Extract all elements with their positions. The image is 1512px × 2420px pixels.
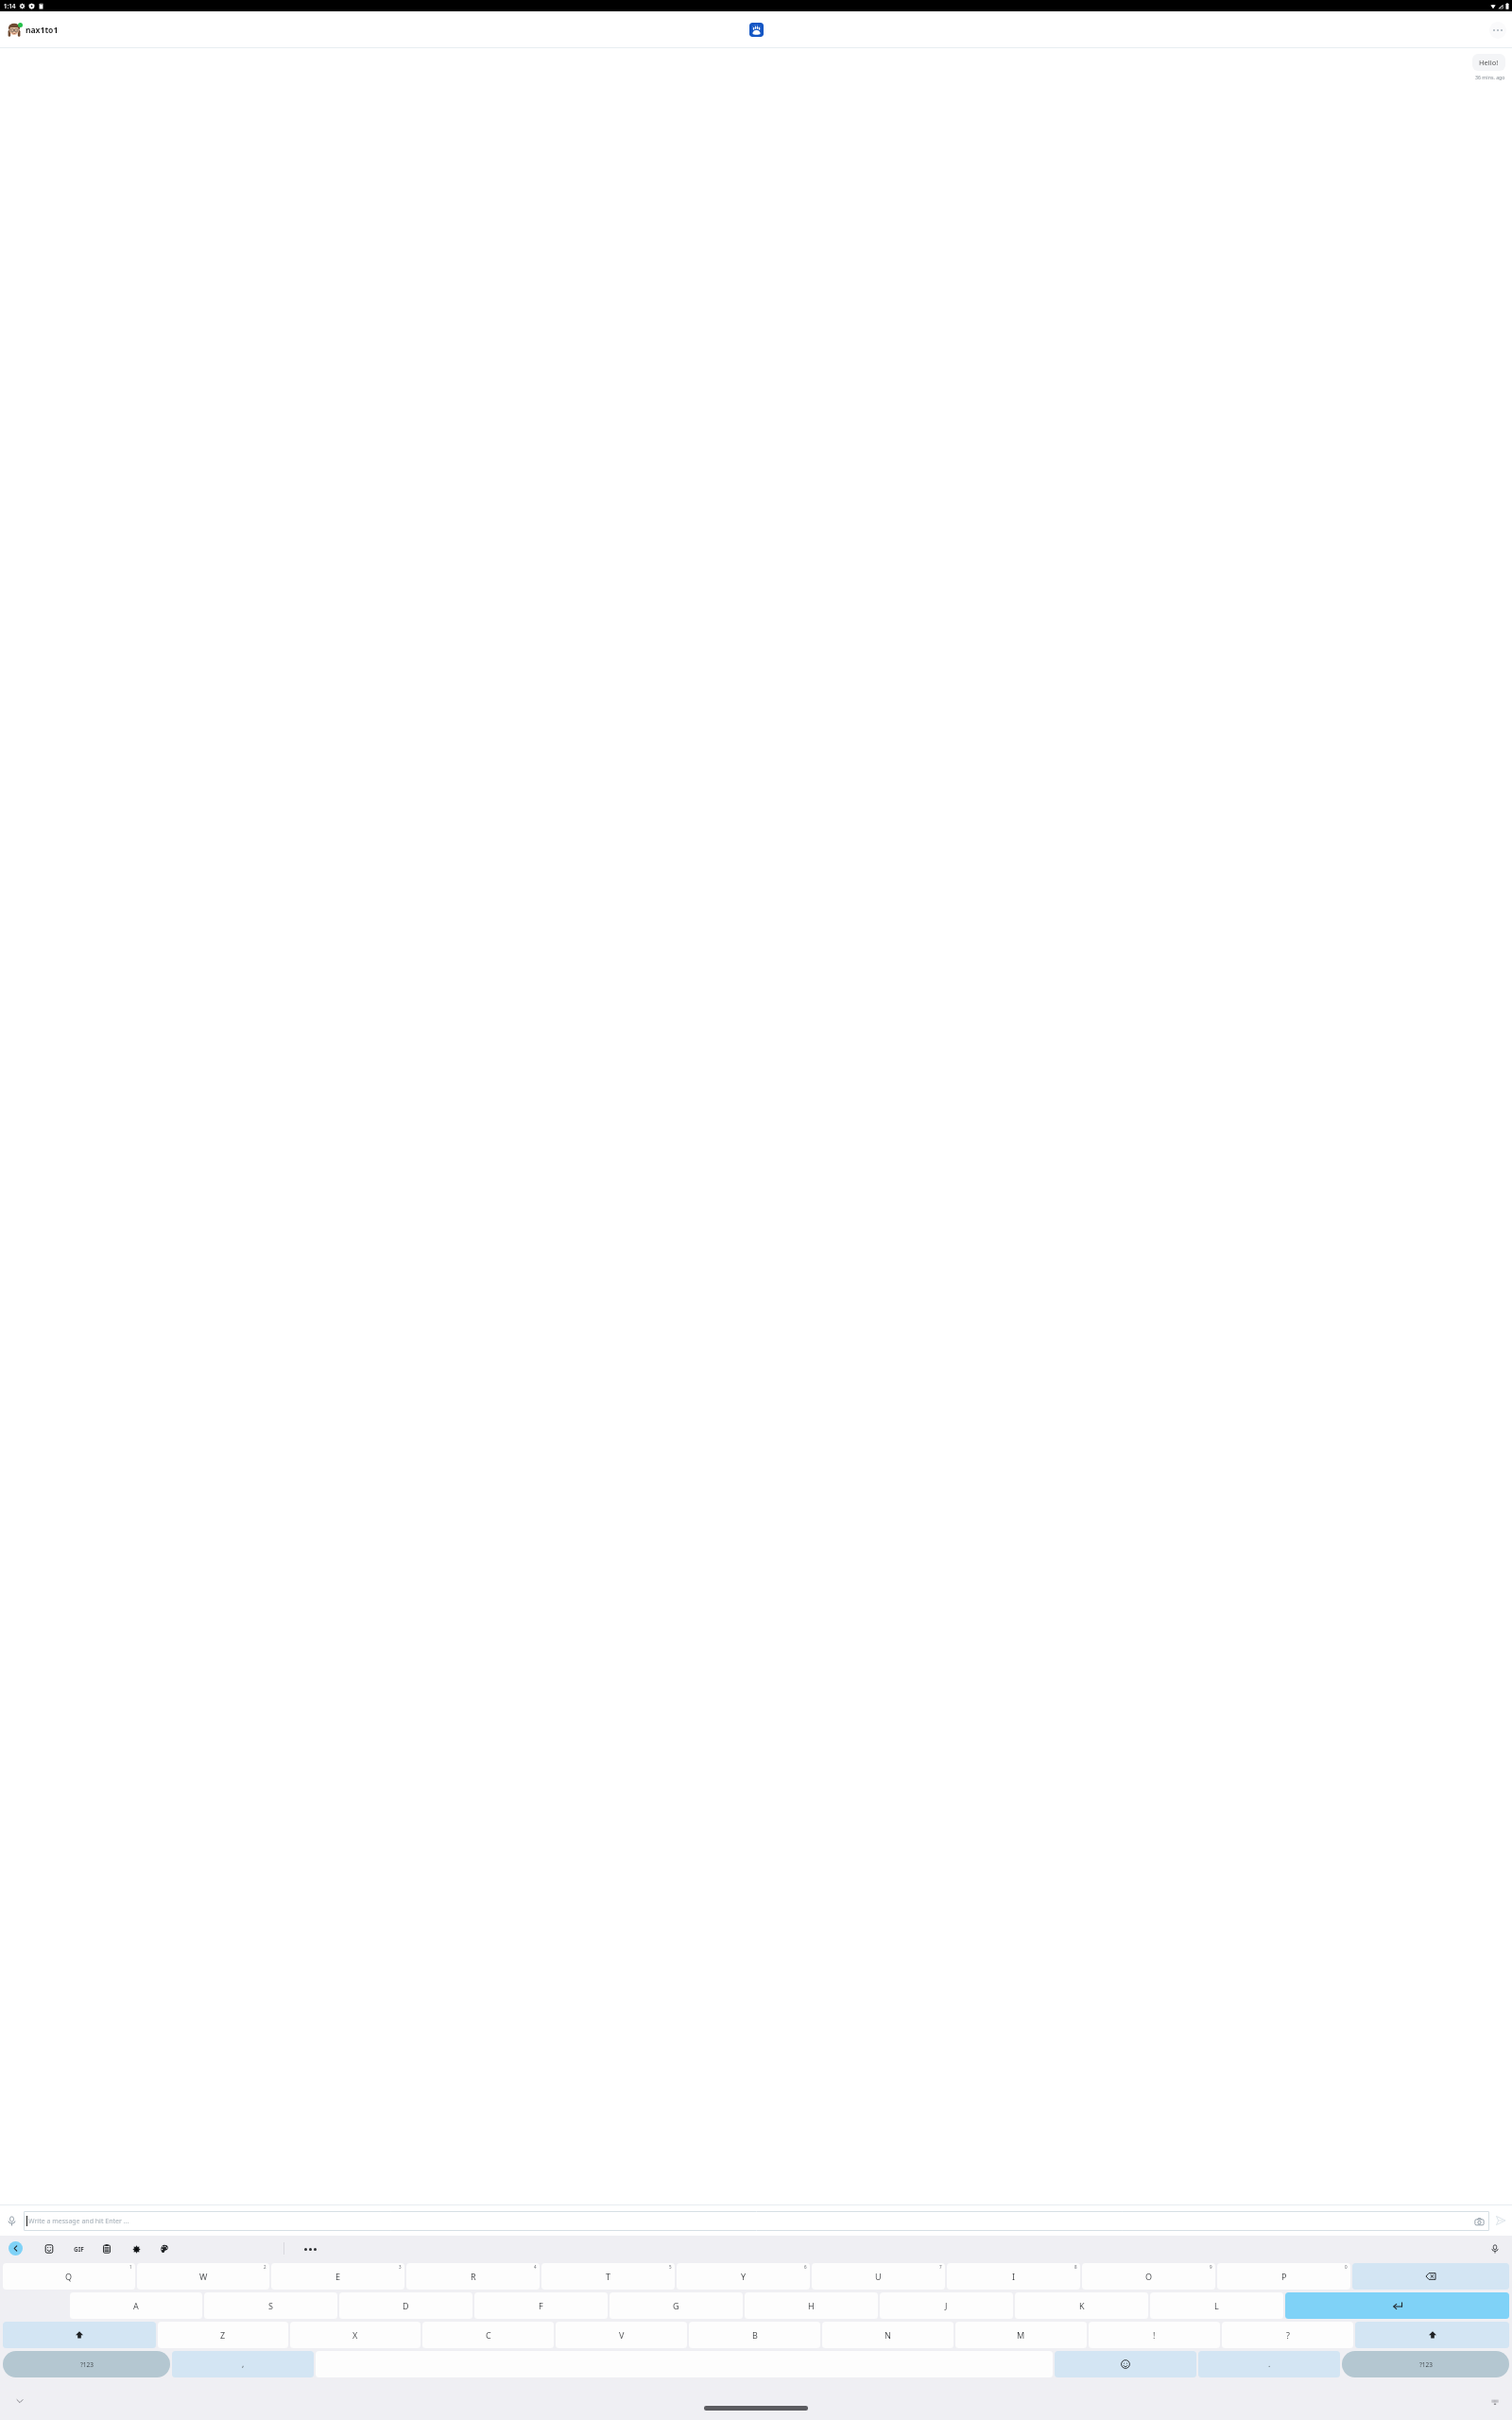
button[interactable]: D <box>339 2292 472 2319</box>
button[interactable]: Send <box>1489 2205 1512 2236</box>
button[interactable]: I <box>947 2263 1080 2290</box>
staticText: 6 <box>804 2264 807 2270</box>
button[interactable]: P <box>1217 2263 1350 2290</box>
button[interactable]: Q <box>3 2263 135 2290</box>
staticText: K <box>1079 2300 1085 2311</box>
button[interactable]: C <box>422 2322 554 2348</box>
button[interactable]: U <box>812 2263 945 2290</box>
staticText: 7 <box>939 2264 942 2270</box>
button[interactable]: nax1to1 <box>5 21 60 40</box>
button[interactable]: S <box>204 2292 337 2319</box>
staticText: N <box>885 2329 891 2341</box>
button[interactable]: Z <box>158 2322 288 2348</box>
staticText: ? <box>1286 2329 1290 2341</box>
staticText: T <box>606 2271 611 2282</box>
button[interactable]: A <box>70 2292 202 2319</box>
button[interactable]: Hide keyboard <box>13 2394 26 2408</box>
button[interactable]: G <box>610 2292 743 2319</box>
staticText: 36 mins. ago <box>1475 74 1505 80</box>
button[interactable]: Emoji <box>1055 2351 1196 2377</box>
button[interactable]: Clipboard <box>99 2241 114 2256</box>
button[interactable]: Backspace <box>1352 2263 1509 2290</box>
button[interactable]: Change keyboard <box>1488 2395 1501 2408</box>
staticText: I <box>1012 2271 1016 2282</box>
staticText: D <box>403 2300 409 2311</box>
button[interactable]: App logo <box>749 23 764 37</box>
button[interactable]: Enter <box>1285 2292 1509 2319</box>
button[interactable]: ? <box>1222 2322 1353 2348</box>
button[interactable]: W <box>137 2263 269 2290</box>
staticText: E <box>335 2271 341 2282</box>
staticText: R <box>471 2271 476 2282</box>
staticText: P <box>1281 2271 1287 2282</box>
button[interactable]: B <box>689 2322 820 2348</box>
staticText: . <box>1268 2359 1271 2370</box>
button[interactable]: F <box>474 2292 608 2319</box>
button[interactable]: K <box>1015 2292 1148 2319</box>
button[interactable]: O <box>1082 2263 1215 2290</box>
button[interactable]: Shift <box>1355 2322 1509 2348</box>
staticText: 4 <box>534 2264 537 2270</box>
staticText: Z <box>220 2329 226 2341</box>
button[interactable]: X <box>290 2322 421 2348</box>
staticText: A <box>133 2300 139 2311</box>
staticText: ! <box>1153 2329 1156 2341</box>
button[interactable]: Voice typing <box>1487 2241 1503 2256</box>
staticText: Y <box>741 2271 747 2282</box>
staticText: L <box>1214 2300 1219 2311</box>
button[interactable]: Home <box>704 2406 808 2411</box>
button[interactable]: N <box>822 2322 954 2348</box>
button[interactable]: ! <box>1089 2322 1220 2348</box>
button[interactable]: Settings <box>129 2241 144 2256</box>
button[interactable]: V <box>556 2322 687 2348</box>
staticText: 3 <box>399 2264 402 2270</box>
button[interactable]: ?123 <box>1342 2351 1509 2377</box>
button[interactable]: L <box>1150 2292 1283 2319</box>
staticText: 1:14 <box>4 2 16 10</box>
staticText: , <box>242 2359 245 2370</box>
staticText: 0 <box>1345 2264 1348 2270</box>
button[interactable]: Stickers <box>42 2241 57 2256</box>
button[interactable]: More options <box>1489 22 1506 39</box>
staticText: Hello! <box>1479 58 1499 67</box>
staticText: ?123 <box>1419 2360 1433 2369</box>
button[interactable]: Voice input <box>0 2205 24 2236</box>
staticText: Q <box>65 2271 73 2282</box>
button[interactable]: R <box>406 2263 540 2290</box>
staticText: 9 <box>1210 2264 1212 2270</box>
button[interactable]: Themes <box>157 2241 172 2256</box>
staticText: GIF <box>74 2245 84 2254</box>
button[interactable]: J <box>880 2292 1013 2319</box>
button[interactable]: Write a message and hit Enter ... <box>24 2211 1489 2231</box>
staticText: S <box>268 2300 273 2311</box>
button[interactable]: Back <box>9 2241 23 2256</box>
staticText: C <box>486 2329 491 2341</box>
staticText: J <box>945 2300 948 2311</box>
button[interactable]: ?123 <box>3 2351 170 2377</box>
staticText: ?123 <box>80 2360 94 2369</box>
button[interactable]: T <box>541 2263 675 2290</box>
button[interactable]: Camera <box>1471 2214 1486 2229</box>
staticText: 5 <box>669 2264 672 2270</box>
staticText: nax1to1 <box>26 25 59 36</box>
staticText: X <box>352 2329 358 2341</box>
staticText: Write a message and hit Enter ... <box>28 2217 1471 2226</box>
button[interactable]: Y <box>677 2263 810 2290</box>
button[interactable]: Shift <box>3 2322 156 2348</box>
staticText: H <box>808 2300 815 2311</box>
staticText: V <box>619 2329 625 2341</box>
staticText: B <box>752 2329 758 2341</box>
staticText: M <box>1017 2329 1025 2341</box>
button[interactable]: Hello! <box>1472 54 1505 71</box>
button[interactable]: E <box>271 2263 404 2290</box>
button[interactable]: M <box>955 2322 1087 2348</box>
button[interactable]: GIF <box>71 2241 86 2256</box>
staticText: 2 <box>264 2264 266 2270</box>
button[interactable]: H <box>745 2292 878 2319</box>
button[interactable]: More <box>302 2241 318 2256</box>
staticText: O <box>1145 2271 1153 2282</box>
staticText: F <box>539 2300 543 2311</box>
